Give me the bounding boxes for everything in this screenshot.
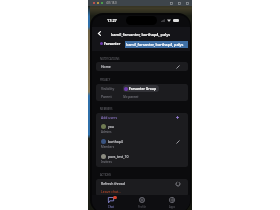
staticText: pavs_test_10 xyxy=(108,154,129,159)
button[interactable]: Add users xyxy=(96,113,188,121)
staticText: iOS 18.0 xyxy=(106,1,117,5)
button[interactable]: barthap4 xyxy=(96,136,188,151)
button[interactable]: Edit xyxy=(174,138,181,145)
staticText: Add users xyxy=(101,115,118,120)
staticText: Chat xyxy=(108,205,114,209)
button[interactable]: Chat xyxy=(99,196,123,209)
staticText: ACTIONS xyxy=(100,173,111,177)
button[interactable]: you xyxy=(96,121,188,136)
staticText: you xyxy=(108,124,114,129)
staticText: Home xyxy=(101,64,111,69)
staticText: MEMBERS xyxy=(100,107,113,111)
staticText: No parent xyxy=(123,94,139,99)
staticText: Admins xyxy=(101,130,112,134)
staticText: 17:27 xyxy=(107,18,117,23)
staticText: barthap4 xyxy=(108,139,123,144)
button[interactable]: Apps xyxy=(160,196,184,209)
staticText: Refresh thread xyxy=(101,181,125,186)
button[interactable]: Back xyxy=(95,29,104,38)
staticText: Parent xyxy=(101,94,112,99)
staticText: Members xyxy=(101,145,115,149)
staticText: PRIVACY xyxy=(100,78,111,82)
button[interactable]: Home xyxy=(96,62,188,71)
button[interactable]: Profile xyxy=(130,196,154,209)
staticText: NOTIFICATIONS xyxy=(100,57,120,61)
staticText: Visibility xyxy=(101,86,115,91)
button[interactable]: Edit xyxy=(174,63,181,70)
button[interactable]: Leave chat... xyxy=(96,187,188,195)
button[interactable]: Refresh thread xyxy=(96,179,188,187)
button[interactable]: pavs_test_10 xyxy=(96,151,188,166)
staticText: kamil_farsanter, barthap4, palys xyxy=(126,42,184,47)
staticText: kamil_farsanter, barthap4, palys xyxy=(111,32,171,37)
staticText: Invitees xyxy=(101,160,112,164)
staticText: Farsanter xyxy=(104,41,121,46)
staticText: Apps xyxy=(169,205,176,209)
button[interactable]: Visibility xyxy=(96,84,188,92)
button[interactable]: Add user xyxy=(174,114,181,121)
staticText: Farsanter Group xyxy=(129,86,157,91)
staticText: Profile xyxy=(138,205,146,209)
staticText: Leave chat... xyxy=(101,189,121,194)
button[interactable]: Refresh xyxy=(174,180,181,187)
button[interactable]: Parent xyxy=(96,92,188,100)
